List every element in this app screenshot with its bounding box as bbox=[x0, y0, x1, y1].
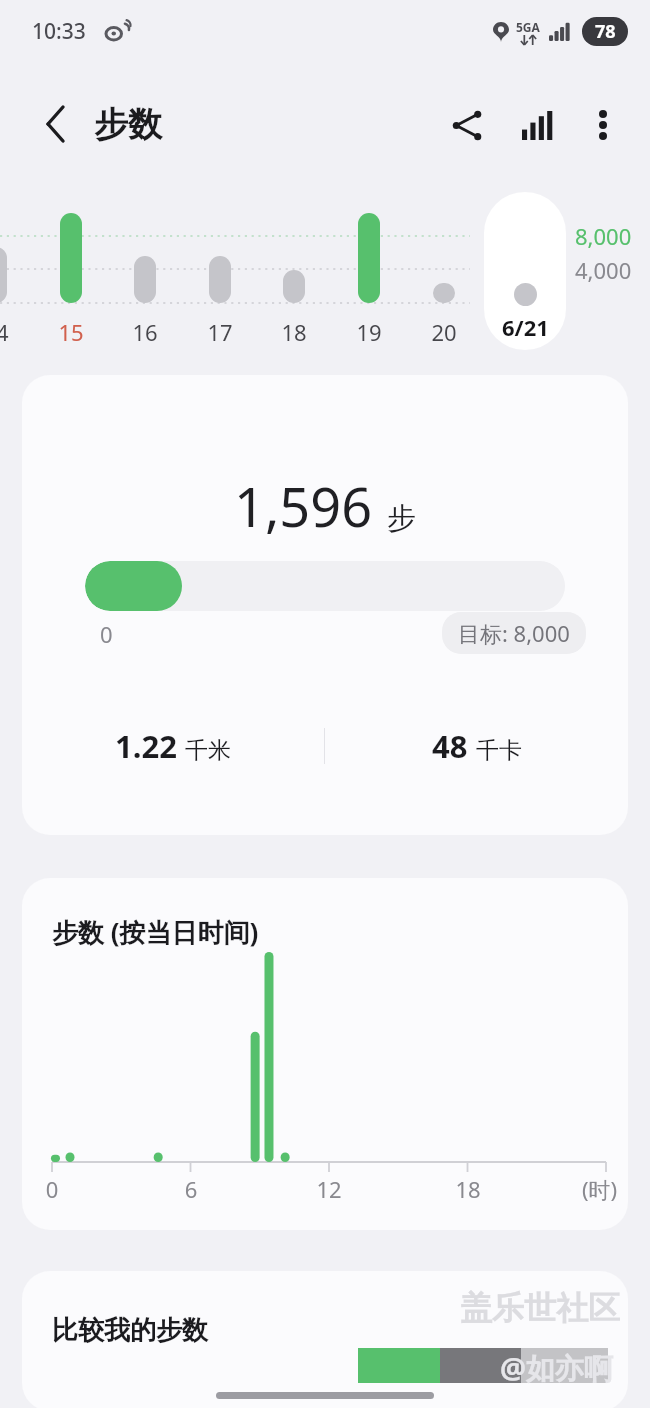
button[interactable]: 比较我的步数 bbox=[22, 1271, 628, 1408]
staticText: 0 bbox=[100, 619, 113, 649]
staticText: 6 bbox=[173, 1174, 209, 1204]
staticText: (时) bbox=[582, 1174, 618, 1204]
staticText: 盖乐世社区 bbox=[460, 1288, 620, 1328]
staticText: 步数 bbox=[94, 103, 162, 146]
staticText: 步数 (按当日时间) bbox=[52, 914, 259, 950]
staticText: 18 bbox=[266, 317, 322, 347]
button[interactable]: 6/21 bbox=[484, 192, 566, 350]
button[interactable]: 48 bbox=[325, 725, 628, 767]
staticText: 12 bbox=[311, 1174, 347, 1204]
staticText: 目标: 8,000 bbox=[458, 618, 570, 648]
staticText: 16 bbox=[117, 317, 173, 347]
button[interactable]: Back bbox=[28, 96, 84, 152]
staticText: 15 bbox=[43, 317, 99, 347]
staticText: 19 bbox=[341, 317, 397, 347]
button[interactable]: 步数 (按当日时间) bbox=[22, 878, 628, 1230]
staticText: 6/21 bbox=[502, 312, 549, 342]
staticText: 20 bbox=[416, 317, 472, 347]
staticText: 10:33 bbox=[32, 17, 86, 46]
staticText: 14 bbox=[0, 317, 24, 347]
staticText: 1,596 bbox=[234, 469, 373, 543]
button[interactable]: More options bbox=[574, 96, 632, 154]
staticText: 48 bbox=[432, 725, 468, 767]
staticText: 5GA bbox=[516, 19, 540, 35]
staticText: 8,000 bbox=[575, 221, 632, 251]
staticText: 0 bbox=[34, 1174, 70, 1204]
staticText: 千卡 bbox=[476, 736, 522, 765]
staticText: 78 bbox=[595, 19, 616, 44]
staticText: 步 bbox=[387, 500, 416, 537]
staticText: @如亦啊 bbox=[500, 1348, 614, 1388]
button[interactable]: Share bbox=[438, 96, 496, 154]
button[interactable]: 1.22 bbox=[22, 725, 324, 767]
button[interactable]: 1,596 bbox=[22, 375, 628, 835]
staticText: 18 bbox=[450, 1174, 486, 1204]
staticText: 1.22 bbox=[115, 725, 177, 767]
button[interactable]: Trends chart bbox=[508, 96, 566, 154]
staticText: 千米 bbox=[185, 736, 231, 765]
staticText: 比较我的步数 bbox=[52, 1314, 208, 1347]
staticText: 4,000 bbox=[575, 255, 632, 285]
staticText: 17 bbox=[192, 317, 248, 347]
